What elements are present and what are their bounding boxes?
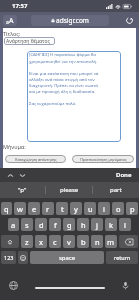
button[interactable]: a bbox=[8, 218, 19, 231]
button[interactable]: d bbox=[35, 218, 47, 231]
staticText: Προεπισκόπηση μηνύματος bbox=[80, 157, 127, 162]
staticText: 17:57 bbox=[12, 2, 28, 10]
staticText: return bbox=[114, 254, 131, 261]
staticText: f bbox=[54, 220, 57, 230]
button[interactable]: s bbox=[21, 218, 33, 231]
button[interactable]: g bbox=[63, 218, 75, 231]
staticText: u bbox=[88, 204, 93, 214]
button[interactable]: e bbox=[28, 202, 40, 215]
button[interactable]: p bbox=[126, 202, 138, 215]
button[interactable]: Emoji bbox=[18, 251, 28, 264]
staticText: Ανάρτηση θέματος bbox=[6, 38, 50, 45]
button[interactable]: b bbox=[77, 235, 89, 248]
button[interactable]: Done bbox=[116, 171, 132, 179]
button[interactable]: [ΟΔΗΓΙΕΣ] Η παραπάνω φόρμα θα χρησιμοποι… bbox=[27, 51, 121, 142]
staticText: space bbox=[59, 254, 76, 262]
staticText: please bbox=[60, 186, 79, 194]
staticText: n bbox=[95, 237, 100, 247]
staticText: y bbox=[74, 204, 78, 214]
staticText: w bbox=[17, 204, 23, 214]
button[interactable]: Previous field bbox=[4, 169, 16, 181]
staticText: v bbox=[67, 237, 71, 247]
staticText: x bbox=[39, 237, 43, 247]
button[interactable]: adsigr.com bbox=[31, 15, 109, 26]
button[interactable]: please bbox=[46, 182, 92, 198]
staticText: t bbox=[61, 204, 64, 214]
button[interactable]: i bbox=[98, 202, 110, 215]
staticText: Μήνυμα: bbox=[3, 143, 26, 150]
button[interactable]: Dictation bbox=[120, 280, 130, 290]
staticText: a bbox=[11, 220, 16, 230]
button[interactable]: u bbox=[84, 202, 96, 215]
button[interactable]: c bbox=[49, 235, 61, 248]
staticText: a bbox=[6, 19, 9, 26]
staticText: [ΟΔΗΓΙΕΣ] Η παραπάνω φόρμα θα χρησιμοποι… bbox=[29, 52, 99, 106]
button[interactable]: a bbox=[3, 15, 17, 26]
staticText: Done bbox=[116, 171, 132, 179]
staticText: h bbox=[81, 220, 86, 230]
staticText: Καταχώρηση απάντησης bbox=[15, 157, 57, 162]
button[interactable]: "p" bbox=[0, 182, 45, 198]
button[interactable]: z bbox=[21, 235, 33, 248]
button[interactable]: f bbox=[49, 218, 61, 231]
button[interactable]: Ανάρτηση θέματος bbox=[4, 37, 55, 45]
staticText: c bbox=[53, 237, 57, 247]
button[interactable]: Καταχώρηση απάντησης bbox=[5, 155, 66, 163]
staticText: j bbox=[96, 220, 98, 230]
button[interactable]: r bbox=[42, 202, 54, 215]
button[interactable]: l bbox=[119, 218, 131, 231]
button[interactable]: v bbox=[63, 235, 75, 248]
staticText: z bbox=[25, 237, 29, 247]
staticText: g bbox=[67, 220, 72, 230]
staticText: r bbox=[46, 204, 50, 214]
staticText: q bbox=[4, 204, 9, 214]
staticText: p bbox=[130, 204, 135, 214]
button[interactable]: h bbox=[77, 218, 89, 231]
button[interactable]: Reload page bbox=[124, 15, 135, 26]
button[interactable]: Backspace bbox=[119, 235, 138, 248]
staticText: k bbox=[109, 220, 114, 230]
staticText: Τίτλος: bbox=[3, 30, 21, 37]
staticText: adsigr.com bbox=[56, 16, 89, 25]
staticText: i bbox=[103, 204, 105, 214]
staticText: b bbox=[81, 237, 86, 247]
button[interactable]: y bbox=[70, 202, 82, 215]
button[interactable]: n bbox=[91, 235, 103, 248]
button[interactable]: j bbox=[91, 218, 103, 231]
button[interactable]: q bbox=[1, 202, 12, 215]
button[interactable]: space bbox=[30, 251, 104, 264]
staticText: o bbox=[116, 204, 121, 214]
staticText: e bbox=[32, 204, 37, 214]
staticText: l bbox=[124, 220, 126, 230]
staticText: "p" bbox=[18, 186, 27, 194]
staticText: A bbox=[9, 16, 14, 26]
button[interactable]: Next field bbox=[16, 169, 28, 181]
button[interactable]: o bbox=[112, 202, 124, 215]
button[interactable]: return bbox=[106, 251, 138, 264]
button[interactable]: w bbox=[14, 202, 26, 215]
staticText: s bbox=[25, 220, 29, 230]
button[interactable]: m bbox=[105, 235, 117, 248]
staticText: part bbox=[110, 186, 122, 194]
button[interactable]: k bbox=[105, 218, 117, 231]
staticText: d bbox=[39, 220, 44, 230]
button[interactable]: part bbox=[93, 182, 139, 198]
button[interactable]: 123 bbox=[1, 251, 16, 264]
staticText: 123 bbox=[4, 254, 14, 261]
staticText: m bbox=[107, 237, 115, 247]
button[interactable]: x bbox=[35, 235, 47, 248]
button[interactable]: Change keyboard bbox=[8, 280, 18, 290]
button[interactable]: Shift bbox=[1, 235, 19, 248]
button[interactable]: Προεπισκόπηση μηνύματος bbox=[72, 155, 134, 163]
button[interactable]: t bbox=[56, 202, 68, 215]
